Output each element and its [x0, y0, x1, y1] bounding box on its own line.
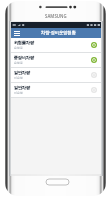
staticText: 운행중: [14, 46, 23, 50]
staticText: 운행중: [14, 61, 23, 65]
button[interactable]: Active: [91, 57, 97, 63]
staticText: 미운행: [14, 91, 23, 95]
staticText: SAMSUNG: [45, 13, 67, 19]
staticText: 일반차량: [14, 85, 30, 90]
button[interactable]: 일반차량: [11, 68, 101, 83]
button[interactable]: Inactive: [91, 72, 97, 78]
button[interactable]: Inactive: [91, 87, 97, 93]
staticText: 위험물차량: [14, 40, 34, 45]
staticText: 일반차량: [14, 70, 30, 75]
button[interactable]: 일반차량: [11, 83, 101, 98]
staticText: 차량·장비운영현황: [41, 30, 76, 36]
button[interactable]: Active: [91, 42, 97, 48]
button[interactable]: 위험물차량: [11, 38, 101, 53]
staticText: 미운행: [14, 76, 23, 80]
button[interactable]: 중장비차량: [11, 53, 101, 68]
button[interactable]: Menu: [12, 28, 21, 38]
staticText: 중장비차량: [14, 55, 34, 60]
